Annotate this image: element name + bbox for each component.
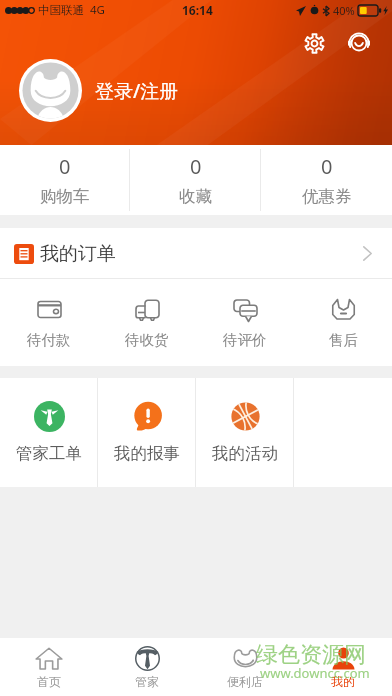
staticText: 4G: [90, 2, 105, 18]
staticText: 0: [321, 153, 333, 180]
button[interactable]: 0: [130, 145, 261, 215]
button[interactable]: 我的报事: [98, 378, 196, 487]
button[interactable]: 我的订单: [0, 228, 392, 279]
staticText: 中国联通: [38, 3, 84, 17]
button[interactable]: 售后: [294, 279, 392, 366]
staticText: 0: [190, 153, 202, 180]
button[interactable]: 我的: [294, 638, 392, 696]
staticText: 便利店: [227, 674, 263, 689]
button[interactable]: 我的活动: [196, 378, 294, 487]
button[interactable]: 首页: [0, 638, 98, 696]
button[interactable]: 0: [0, 145, 130, 215]
staticText: 我的订单: [40, 242, 116, 266]
button[interactable]: 0: [261, 145, 392, 215]
staticText: 首页: [37, 674, 61, 689]
button[interactable]: 待收货: [98, 279, 196, 366]
staticText: 待评价: [223, 331, 267, 349]
button[interactable]: 登录/注册: [19, 59, 179, 122]
button[interactable]: 待评价: [196, 279, 294, 366]
staticText: 40%: [333, 3, 355, 18]
staticText: 绿色资源网: [256, 641, 366, 669]
staticText: 管家: [135, 674, 159, 689]
staticText: 售后: [329, 331, 358, 349]
staticText: 收藏: [179, 186, 212, 207]
staticText: 管家工单: [16, 443, 82, 464]
staticText: 待付款: [27, 331, 71, 349]
staticText: 我的: [331, 674, 355, 689]
staticText: 待收货: [125, 331, 169, 349]
button[interactable]: 管家: [98, 638, 196, 696]
button[interactable]: 待付款: [0, 279, 98, 366]
staticText: 我的报事: [114, 443, 180, 464]
staticText: www.downcc.com: [260, 664, 370, 682]
staticText: 优惠券: [302, 186, 352, 207]
button[interactable]: 管家工单: [0, 378, 98, 487]
button[interactable]: Settings: [297, 26, 331, 60]
button[interactable]: 便利店: [196, 638, 294, 696]
staticText: 0: [59, 153, 71, 180]
staticText: 购物车: [40, 186, 90, 207]
staticText: 我的活动: [212, 443, 278, 464]
button[interactable]: Customer service: [342, 26, 376, 60]
staticText: 登录/注册: [95, 78, 179, 104]
staticText: 16:14: [182, 2, 213, 18]
